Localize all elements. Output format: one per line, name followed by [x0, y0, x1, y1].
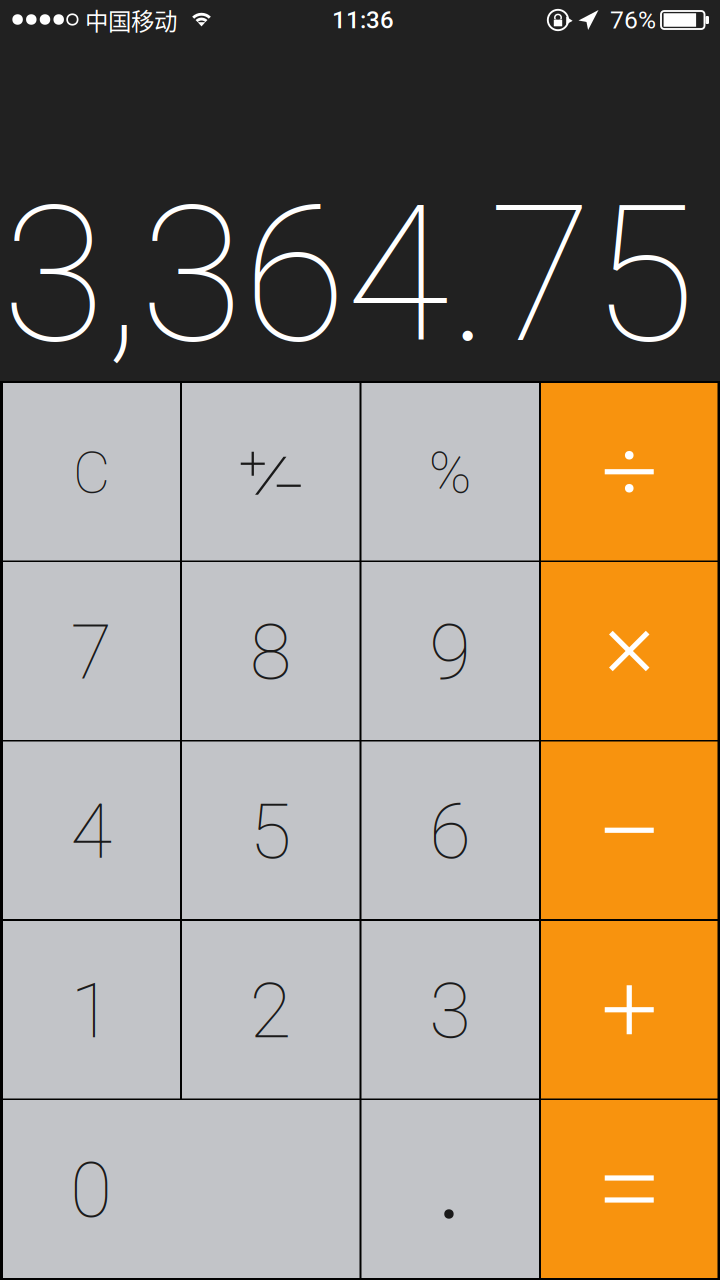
button[interactable]: Minus: [541, 741, 717, 919]
button[interactable]: Percent: [361, 383, 539, 560]
button[interactable]: Plus: [541, 921, 717, 1098]
button[interactable]: Decimal point: [361, 1100, 539, 1278]
button[interactable]: Four: [3, 741, 180, 919]
button[interactable]: Seven: [3, 562, 180, 740]
button[interactable]: Five: [182, 741, 359, 919]
button[interactable]: Clear: [3, 383, 180, 560]
staticText: 3: [429, 967, 471, 1056]
button[interactable]: Plus minus: [182, 383, 359, 560]
staticText: 9: [429, 608, 471, 697]
staticText: C: [73, 440, 110, 507]
staticText: 3,364.75: [2, 165, 695, 386]
staticText: 2: [250, 967, 292, 1056]
button[interactable]: One: [3, 921, 180, 1098]
button[interactable]: Eight: [182, 562, 359, 740]
button[interactable]: Multiply: [541, 562, 717, 740]
button[interactable]: Divide: [541, 383, 717, 560]
staticText: 8: [250, 608, 292, 697]
button[interactable]: Zero: [3, 1100, 359, 1278]
staticText: 4: [70, 787, 112, 876]
staticText: 中国移动: [85, 3, 177, 37]
staticText: 11:36: [332, 6, 394, 34]
staticText: 1: [70, 967, 112, 1056]
staticText: 5: [250, 787, 292, 876]
button[interactable]: Six: [361, 741, 539, 919]
button[interactable]: Two: [182, 921, 359, 1098]
button[interactable]: Three: [361, 921, 539, 1098]
staticText: 6: [429, 787, 471, 876]
staticText: 7: [70, 608, 112, 697]
button[interactable]: Nine: [361, 562, 539, 740]
staticText: 76%: [610, 5, 656, 34]
button[interactable]: Equals: [541, 1100, 717, 1278]
staticText: %: [429, 440, 472, 507]
staticText: 0: [70, 1146, 112, 1235]
